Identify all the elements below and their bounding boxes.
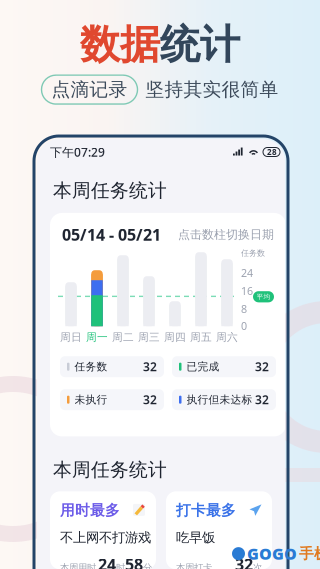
staticText: 32: [143, 392, 157, 408]
staticText: 任务数: [241, 248, 265, 258]
staticText: 用时最多: [60, 501, 120, 519]
staticText: GOGO: [247, 543, 297, 564]
staticText: 不上网不打游戏: [60, 529, 151, 546]
button[interactable]: 执行但未达标: [172, 389, 276, 410]
staticText: 统计: [160, 20, 240, 69]
staticText: 8: [241, 302, 247, 316]
staticText: 周六: [216, 331, 238, 344]
staticText: 打卡最多: [176, 501, 236, 519]
button[interactable]: 周六: [214, 331, 240, 343]
staticText: 本周用时: [60, 562, 96, 569]
staticText: 周三: [138, 331, 160, 344]
staticText: 16: [241, 284, 253, 298]
button[interactable]: 打卡最多: [166, 491, 272, 569]
button[interactable]: 已完成: [172, 356, 276, 377]
staticText: 周日: [60, 331, 82, 344]
staticText: 吃早饭: [176, 529, 215, 546]
staticText: 分: [143, 562, 152, 569]
staticText: 24: [98, 554, 116, 569]
staticText: 下午07:29: [50, 144, 105, 160]
staticText: 周一: [86, 331, 108, 344]
staticText: 坚持其实很简单: [145, 78, 278, 101]
staticText: 24: [241, 266, 253, 280]
staticText: 05/14 - 05/21: [62, 224, 161, 245]
button[interactable]: 周五: [188, 331, 214, 343]
button[interactable]: 未执行: [60, 389, 164, 410]
button[interactable]: 周一: [84, 331, 110, 343]
staticText: 数据: [80, 20, 160, 69]
button[interactable]: 用时最多: [50, 491, 156, 569]
staticText: 执行但未达标: [186, 393, 252, 406]
staticText: 点击数柱切换日期: [178, 227, 274, 242]
staticText: 0: [241, 319, 247, 333]
staticText: 58: [125, 554, 143, 569]
staticText: 任务数: [74, 360, 107, 373]
staticText: 平均: [256, 293, 270, 301]
button[interactable]: 周二: [110, 331, 136, 343]
staticText: 已完成: [186, 360, 219, 373]
staticText: 周五: [190, 331, 212, 344]
staticText: 本周打卡: [176, 562, 212, 569]
staticText: 手机网: [299, 545, 320, 563]
button[interactable]: 任务数: [60, 356, 164, 377]
staticText: 周四: [164, 331, 186, 344]
staticText: 时: [116, 562, 125, 569]
button[interactable]: 周三: [136, 331, 162, 343]
staticText: 未执行: [74, 393, 107, 406]
staticText: 点滴记录: [51, 78, 127, 101]
staticText: 32: [235, 554, 253, 569]
staticText: 本周任务统计: [53, 458, 167, 481]
button[interactable]: 周日: [58, 331, 84, 343]
staticText: 次: [253, 562, 262, 569]
staticText: 32: [255, 359, 269, 375]
staticText: 周二: [112, 331, 134, 344]
staticText: 本周任务统计: [53, 179, 167, 202]
staticText: 32: [143, 359, 157, 375]
staticText: 32: [255, 392, 269, 408]
button[interactable]: 周四: [162, 331, 188, 343]
staticText: 28: [267, 147, 277, 157]
